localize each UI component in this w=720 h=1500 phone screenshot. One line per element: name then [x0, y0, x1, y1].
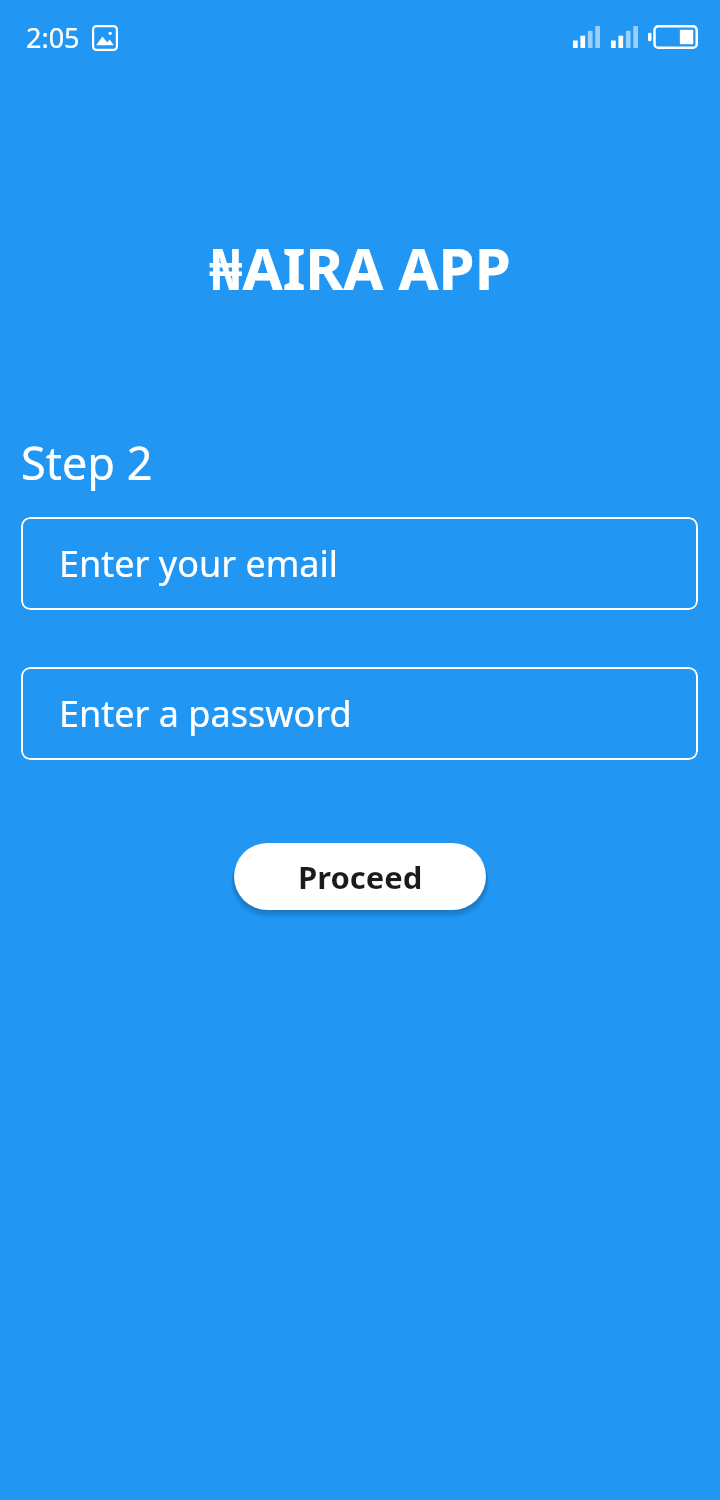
staticText: Step 2: [21, 432, 153, 493]
staticText: Enter your email: [59, 539, 339, 588]
staticText: ₦AIRA APP: [0, 228, 720, 307]
staticText: 2:05: [26, 19, 80, 56]
staticText: Proceed: [298, 856, 423, 898]
button[interactable]: Proceed: [234, 843, 486, 910]
staticText: Enter a password: [59, 689, 352, 738]
button[interactable]: Enter a password: [21, 667, 698, 760]
button[interactable]: Enter your email: [21, 517, 698, 610]
